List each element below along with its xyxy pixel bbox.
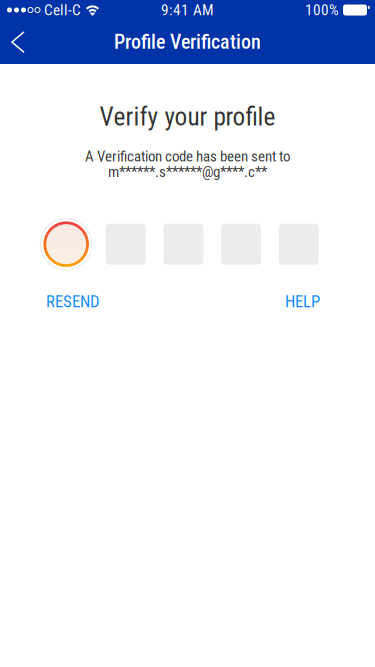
staticText: A Verification code has been sent to: [85, 148, 290, 165]
button[interactable]: Verification code digit 1: [40, 218, 93, 271]
button[interactable]: RESEND: [46, 288, 100, 315]
staticText: Cell-C: [44, 1, 81, 19]
button[interactable]: Back: [0, 20, 42, 64]
staticText: Profile Verification: [114, 30, 261, 54]
staticText: 100%: [305, 1, 339, 19]
staticText: HELP: [285, 292, 320, 311]
staticText: 9:41 AM: [161, 1, 214, 19]
staticText: m******.s******@g****.c**: [108, 163, 267, 181]
staticText: RESEND: [46, 292, 100, 311]
staticText: Verify your profile: [99, 102, 275, 132]
button[interactable]: HELP: [285, 288, 320, 315]
